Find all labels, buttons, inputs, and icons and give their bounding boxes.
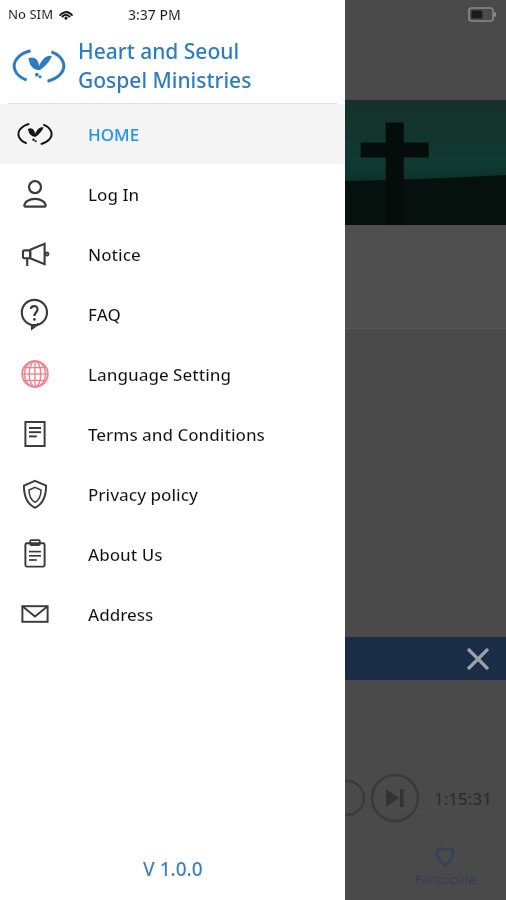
staticText: Gospel Ministries — [78, 66, 252, 95]
staticText: Language Setting — [88, 363, 232, 386]
button[interactable]: HOME — [0, 104, 345, 164]
button[interactable]: Close — [460, 641, 496, 677]
button[interactable]: Notice — [0, 224, 345, 284]
staticText: and Japanese — [10, 158, 106, 178]
button[interactable]: FAQ — [0, 284, 345, 344]
staticText: Privacy policy — [88, 483, 199, 506]
staticText: No SIM — [8, 5, 54, 23]
staticText: About Us — [88, 543, 163, 566]
button[interactable]: About Us — [0, 524, 345, 584]
staticText: Log In — [88, 183, 140, 206]
button[interactable]: Privacy policy — [0, 464, 345, 524]
staticText: 3:37 PM — [128, 5, 181, 24]
staticText: 일본어 방송을 — [10, 114, 104, 134]
staticText: V 1.0.0 — [143, 856, 203, 882]
staticText: 를, — [10, 186, 28, 205]
staticText: FAQ — [88, 303, 121, 326]
staticText: Address — [88, 603, 154, 626]
staticText: Participate — [415, 871, 476, 887]
staticText: Heart and Seoul — [78, 37, 240, 66]
staticText: HOME — [88, 123, 140, 146]
button[interactable]: Participate — [410, 843, 480, 887]
staticText: Notice — [88, 243, 141, 266]
button[interactable]: Next — [370, 773, 420, 823]
button[interactable]: Terms and Conditions — [0, 404, 345, 464]
button[interactable]: Language Setting — [0, 344, 345, 404]
staticText: 1:15:31 — [434, 787, 492, 810]
button[interactable]: Address — [0, 584, 345, 644]
button[interactable]: Log In — [0, 164, 345, 224]
staticText: Terms and Conditions — [88, 423, 265, 446]
